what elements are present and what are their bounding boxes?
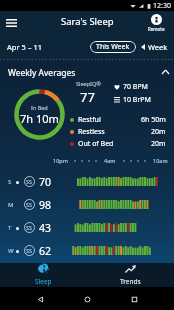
staticText: Sleep bbox=[35, 277, 52, 286]
staticText: 7h 10m bbox=[20, 111, 59, 126]
staticText: 62 bbox=[39, 244, 53, 258]
staticText: SS bbox=[26, 201, 33, 208]
button[interactable]: Open navigation menu bbox=[0, 11, 23, 34]
staticText: W bbox=[8, 247, 14, 255]
staticText: SS bbox=[26, 224, 33, 231]
staticText: This Week bbox=[96, 42, 130, 52]
staticText: 20m bbox=[151, 127, 166, 137]
staticText: 10am bbox=[153, 157, 168, 164]
staticText: 12:30 bbox=[153, 1, 171, 11]
staticText: Week bbox=[148, 42, 168, 52]
staticText: 98 bbox=[39, 198, 53, 212]
staticText: 10 BrPM bbox=[123, 95, 151, 105]
staticText: Weekly Averages bbox=[8, 67, 76, 79]
staticText: 77 bbox=[80, 88, 95, 106]
button[interactable]: M bbox=[0, 193, 174, 216]
button[interactable]: Sleep bbox=[0, 263, 87, 287]
staticText: M bbox=[8, 201, 14, 209]
button[interactable]: Recent apps bbox=[127, 292, 141, 306]
button[interactable]: Collapse bbox=[159, 66, 171, 78]
staticText: 6h 50m bbox=[141, 115, 166, 125]
staticText: SleepIQ® bbox=[76, 80, 101, 87]
button[interactable]: Week bbox=[141, 42, 168, 52]
button[interactable]: This Week bbox=[90, 41, 136, 53]
staticText: 43 bbox=[39, 221, 53, 235]
staticText: Restless bbox=[78, 127, 105, 137]
staticText: Sara's Sleep bbox=[61, 15, 114, 28]
staticText: 4am bbox=[104, 157, 116, 164]
staticText: Out of Bed bbox=[78, 139, 114, 149]
staticText: In Bed bbox=[31, 104, 48, 111]
staticText: 10pm bbox=[53, 157, 68, 164]
button[interactable]: Trends bbox=[87, 263, 174, 287]
button[interactable]: Home bbox=[80, 292, 94, 306]
staticText: 70 bbox=[39, 175, 53, 189]
staticText: Restful bbox=[78, 115, 101, 125]
button[interactable]: S bbox=[0, 170, 174, 193]
button[interactable]: T bbox=[0, 216, 174, 239]
staticText: SS bbox=[26, 247, 33, 254]
staticText: S bbox=[8, 178, 14, 186]
button[interactable]: Back bbox=[33, 292, 47, 306]
staticText: Apr 5 – 11 bbox=[7, 42, 42, 52]
staticText: 70 BPM bbox=[123, 82, 148, 92]
staticText: T bbox=[8, 224, 14, 232]
staticText: SS bbox=[26, 178, 33, 185]
staticText: Remote bbox=[148, 26, 165, 32]
button[interactable]: Remote bbox=[148, 14, 165, 32]
button[interactable]: W bbox=[0, 239, 174, 262]
staticText: 20m bbox=[151, 139, 166, 149]
staticText: Trends bbox=[120, 277, 141, 286]
